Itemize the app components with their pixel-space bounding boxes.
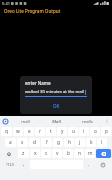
button[interactable]: a (5, 138, 16, 147)
staticText: v (56, 150, 59, 157)
button[interactable]: g (53, 138, 63, 147)
staticText: r (39, 128, 41, 135)
staticText: malls (82, 118, 93, 124)
button[interactable]: Keyboard settings (1, 117, 10, 126)
button[interactable]: m (85, 149, 95, 158)
staticText: walked 30 minutes at the mall (25, 89, 84, 95)
button[interactable]: Mall (41, 116, 72, 126)
staticText: h (68, 139, 71, 146)
staticText: z (22, 150, 25, 157)
button[interactable]: w (13, 127, 23, 136)
staticText: s (21, 139, 24, 146)
button[interactable]: q (1, 127, 12, 136)
staticText: 5:41 (2, 1, 10, 6)
button[interactable]: c (41, 149, 51, 158)
button[interactable]: x (30, 149, 40, 158)
staticText: mall (21, 118, 30, 124)
button[interactable]: u (68, 127, 78, 136)
staticText: w (16, 128, 20, 135)
staticText: t (50, 128, 52, 135)
staticText: ?123 (6, 162, 14, 167)
staticText: c (45, 150, 48, 157)
button[interactable]: b (63, 149, 73, 158)
button[interactable]: p (101, 127, 111, 136)
button[interactable]: t (46, 127, 56, 136)
staticText: o (94, 128, 97, 135)
button[interactable]: malls (72, 116, 103, 126)
button[interactable]: r (35, 127, 45, 136)
staticText: j (79, 139, 81, 146)
button[interactable]: z (18, 149, 29, 158)
staticText: u (72, 128, 75, 135)
button[interactable]: y (57, 127, 67, 136)
button[interactable]: ?123 (1, 160, 18, 169)
staticText: , (23, 161, 25, 168)
button[interactable]: . (84, 160, 94, 169)
button[interactable]: o (90, 127, 100, 136)
staticText: f (46, 139, 48, 146)
button[interactable]: Emoji (95, 160, 111, 169)
button[interactable]: n (74, 149, 84, 158)
button[interactable]: d (29, 138, 40, 147)
staticText: x (34, 150, 37, 157)
staticText: y (61, 128, 64, 135)
staticText: OK (53, 103, 60, 109)
staticText: p (105, 128, 108, 135)
staticText: b (67, 150, 70, 157)
button[interactable]: e (24, 127, 34, 136)
button[interactable]: j (75, 138, 85, 147)
button[interactable]: k (86, 138, 96, 147)
button[interactable]: f (41, 138, 52, 147)
staticText: q (5, 128, 8, 135)
button[interactable]: Shift (1, 149, 17, 158)
staticText: e (28, 128, 31, 135)
button[interactable]: Backspace (96, 149, 111, 158)
staticText: enter Name (25, 80, 51, 86)
button[interactable]: , (19, 160, 29, 169)
staticText: k (90, 139, 93, 146)
button[interactable]: l (97, 138, 107, 147)
staticText: g (57, 139, 60, 146)
staticText: l (101, 139, 103, 146)
staticText: . (88, 161, 90, 168)
staticText: i (83, 128, 85, 135)
staticText: Mall (52, 118, 61, 124)
button[interactable]: v (52, 149, 62, 158)
staticText: d (33, 139, 36, 146)
staticText: n (78, 150, 81, 157)
button[interactable]: More suggestions (103, 116, 111, 126)
staticText: m (88, 150, 93, 157)
button[interactable]: OK (47, 102, 66, 110)
button[interactable]: s (17, 138, 28, 147)
button[interactable]: h (64, 138, 74, 147)
staticText: a (9, 139, 12, 146)
button[interactable]: i (79, 127, 89, 136)
button[interactable]: mall (10, 116, 41, 126)
staticText: Oreo Lite Program Output (4, 8, 61, 14)
